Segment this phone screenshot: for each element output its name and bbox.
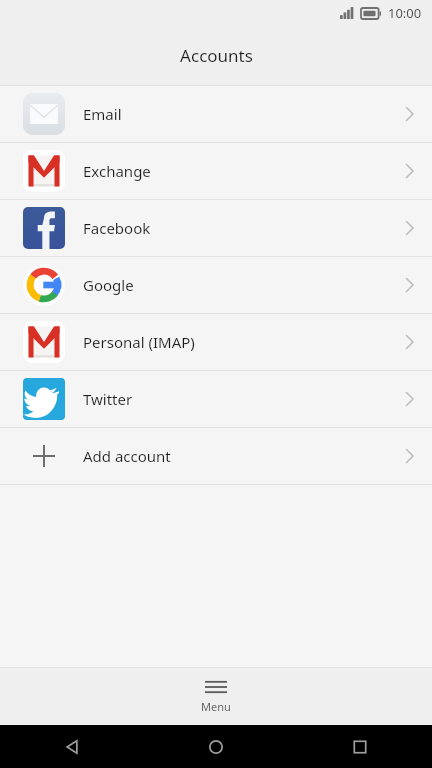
button[interactable]: Google: [0, 257, 432, 313]
button[interactable]: Twitter: [0, 371, 432, 427]
button[interactable]: Menu: [161, 668, 271, 725]
button[interactable]: Personal (IMAP): [0, 314, 432, 370]
button[interactable]: Facebook: [0, 200, 432, 256]
button[interactable]: Recents: [288, 725, 432, 768]
button[interactable]: Exchange: [0, 143, 432, 199]
button[interactable]: Back: [0, 725, 144, 768]
staticText: Email: [83, 104, 122, 124]
staticText: Personal (IMAP): [83, 332, 195, 352]
button[interactable]: Add account: [0, 428, 432, 484]
staticText: Facebook: [83, 218, 151, 238]
button[interactable]: Email: [0, 86, 432, 142]
staticText: 10:00: [388, 4, 422, 22]
button[interactable]: Home: [144, 725, 288, 768]
staticText: Twitter: [83, 389, 133, 409]
staticText: Google: [83, 275, 134, 295]
staticText: Exchange: [83, 161, 151, 181]
staticText: Accounts: [180, 44, 253, 67]
staticText: Menu: [201, 699, 231, 714]
staticText: Add account: [83, 446, 171, 466]
